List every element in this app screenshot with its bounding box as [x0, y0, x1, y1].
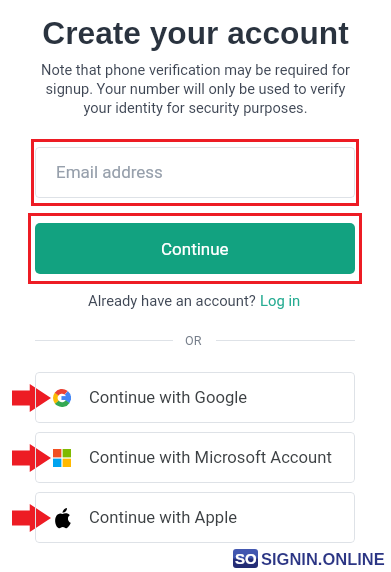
staticText: OR [185, 333, 202, 348]
button[interactable]: Continue with Google [35, 372, 355, 423]
button[interactable]: Log in [260, 292, 301, 309]
button[interactable]: Email address [35, 147, 355, 198]
staticText: Already have an account? [88, 292, 260, 309]
staticText: Continue [161, 239, 229, 259]
staticText: Continue with Apple [89, 508, 238, 528]
other: SIGNIN.ONLINE logo [233, 549, 258, 568]
staticText: Email address [56, 162, 163, 182]
staticText: Create your account [0, 15, 391, 50]
staticText: SO [235, 550, 257, 567]
staticText: SIGNIN.ONLINE [261, 550, 385, 568]
staticText: Note that phone verification may be requ… [34, 61, 357, 117]
staticText: Log in [260, 292, 301, 309]
button[interactable]: Continue with Apple [35, 492, 355, 543]
staticText: Continue with Google [89, 388, 248, 408]
button[interactable]: Continue with Microsoft Account [35, 432, 355, 483]
staticText: Continue with Microsoft Account [89, 448, 332, 468]
button[interactable]: Continue [35, 223, 355, 274]
